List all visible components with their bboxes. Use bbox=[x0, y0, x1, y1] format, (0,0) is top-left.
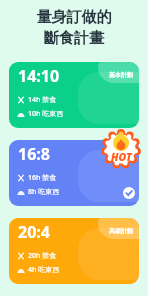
staticText: 14h 禁食 bbox=[28, 95, 57, 105]
staticText: 10h 吃東西 bbox=[28, 109, 64, 119]
other: Selected plan bbox=[123, 187, 135, 199]
staticText: 量身訂做的 斷食計畫 bbox=[0, 8, 148, 48]
staticText: 8h 吃東西 bbox=[28, 187, 60, 197]
staticText: 16:8 bbox=[18, 143, 50, 165]
staticText: 高級計劃 bbox=[109, 227, 133, 235]
staticText: HOT bbox=[111, 150, 132, 164]
staticText: 20h 禁食 bbox=[28, 251, 57, 261]
staticText: 16h 禁食 bbox=[28, 173, 57, 183]
staticText: 14:10 bbox=[18, 65, 60, 87]
button[interactable]: 基本計劃 bbox=[9, 62, 139, 128]
staticText: 20:4 bbox=[18, 221, 50, 243]
button[interactable]: 高級計劃 bbox=[9, 218, 139, 284]
staticText: 基本計劃 bbox=[109, 71, 133, 79]
other: Hot plan bbox=[101, 129, 141, 169]
button[interactable]: 16:8 bbox=[9, 140, 139, 206]
staticText: 4h 吃東西 bbox=[28, 265, 60, 275]
